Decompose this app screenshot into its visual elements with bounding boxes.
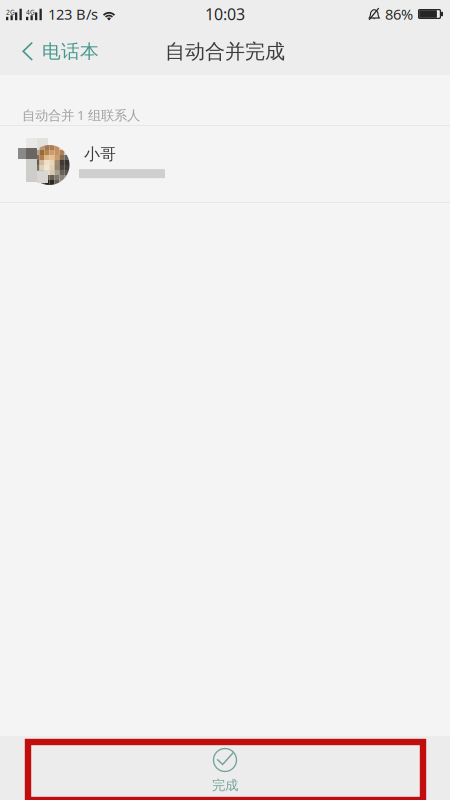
staticText: 完成 — [212, 777, 238, 794]
staticText: 123 B/s — [48, 4, 98, 24]
staticText: 86% — [385, 4, 413, 24]
staticText: 10:03 — [205, 3, 245, 25]
staticText: 4G — [26, 7, 35, 17]
button[interactable]: 完成 — [0, 736, 450, 800]
staticText: 自动合并 1 组联系人 — [22, 106, 140, 124]
staticText: 电话本 — [42, 40, 99, 63]
staticText: 小哥 — [84, 144, 116, 164]
staticText: 2G — [6, 7, 15, 17]
staticText: 自动合并完成 — [165, 39, 285, 64]
button[interactable]: 电话本 — [0, 28, 115, 75]
button[interactable]: 小哥 — [0, 126, 450, 202]
